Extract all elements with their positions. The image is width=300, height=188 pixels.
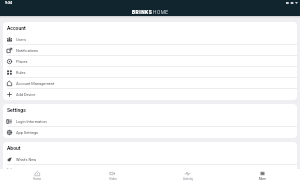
staticText: What's New [16, 157, 37, 162]
staticText: Account Management [16, 81, 55, 86]
button[interactable]: Rules [3, 67, 297, 78]
button[interactable]: Users [3, 34, 297, 45]
button[interactable]: Account Management [3, 78, 297, 89]
staticText: Users [16, 37, 26, 42]
staticText: BRINKS [132, 9, 153, 15]
button[interactable]: Video [75, 171, 150, 188]
staticText: Rules [16, 70, 26, 75]
button[interactable]: Login Information [3, 116, 297, 127]
staticText: Account [7, 25, 26, 31]
other: Status icons [286, 2, 298, 4]
button[interactable]: Places [3, 56, 297, 67]
button[interactable]: App Settings [3, 127, 297, 138]
staticText: Activity [183, 177, 193, 181]
button[interactable]: Activity [150, 171, 225, 188]
button[interactable]: More [225, 171, 300, 188]
staticText: Home [33, 177, 42, 181]
button[interactable]: Legal [3, 165, 297, 176]
staticText: Login Information [16, 119, 47, 124]
staticText: Settings [7, 107, 26, 113]
button[interactable]: Home [0, 171, 75, 188]
staticText: Add Device [16, 92, 36, 97]
button[interactable]: What's New [3, 154, 297, 165]
staticText: HOME [153, 9, 169, 15]
button[interactable]: Notifications [3, 45, 297, 56]
staticText: More [259, 177, 266, 181]
staticText: Notifications [16, 48, 39, 53]
staticText: App Settings [16, 130, 39, 135]
staticText: 9:34 [5, 1, 13, 5]
staticText: Places [16, 59, 28, 64]
button[interactable]: Add Device [3, 89, 297, 100]
staticText: Video [109, 177, 117, 181]
staticText: About [7, 145, 21, 151]
